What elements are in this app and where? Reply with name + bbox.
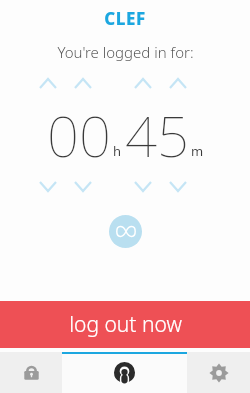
button[interactable]: Increase minutes tens (134, 76, 152, 90)
staticText: 00 (47, 97, 111, 173)
staticText: h (113, 142, 122, 160)
button[interactable]: log out now (0, 301, 250, 348)
staticText: CLEF (104, 7, 146, 30)
button[interactable]: Stay logged in indefinitely (109, 215, 142, 248)
staticText: 45 (125, 97, 189, 173)
button[interactable]: Increase minutes ones (169, 76, 187, 90)
button[interactable]: Lock (0, 352, 62, 393)
button[interactable]: Decrease hours ones (74, 179, 92, 193)
button[interactable]: Settings (187, 352, 250, 393)
button[interactable]: Increase hours ones (74, 76, 92, 90)
button[interactable]: Increase hours tens (39, 76, 57, 90)
staticText: You're logged in for: (57, 42, 194, 62)
button[interactable]: Profile (62, 352, 187, 393)
button[interactable]: Decrease minutes ones (169, 179, 187, 193)
button[interactable]: Decrease minutes tens (134, 179, 152, 193)
staticText: m (191, 142, 204, 160)
staticText: log out now (69, 310, 182, 339)
button[interactable]: Decrease hours tens (39, 179, 57, 193)
